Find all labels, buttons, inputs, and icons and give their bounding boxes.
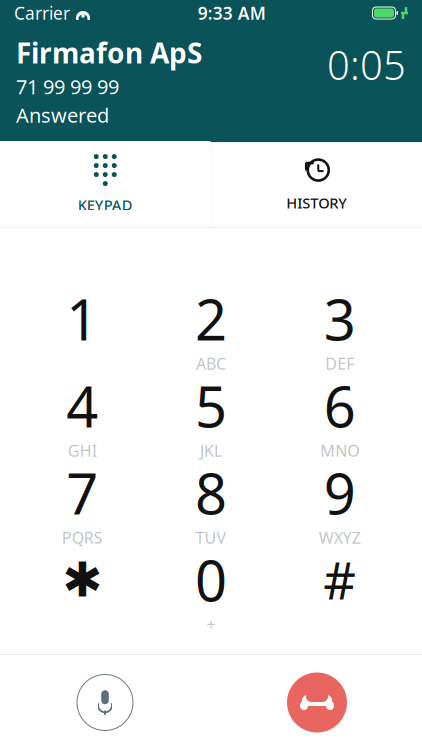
staticText: KEYPAD xyxy=(78,195,133,215)
button[interactable]: 4 xyxy=(18,373,147,453)
button[interactable]: 6 xyxy=(275,373,404,453)
button[interactable]: End call xyxy=(262,657,372,747)
button[interactable]: HISTORY xyxy=(211,143,422,227)
staticText: 4 xyxy=(66,369,98,443)
staticText: TUV xyxy=(195,527,226,548)
staticText: # xyxy=(323,546,356,613)
staticText: HISTORY xyxy=(286,193,347,213)
button[interactable]: 1 xyxy=(18,286,147,366)
button[interactable]: 8 xyxy=(147,460,275,540)
button[interactable]: # xyxy=(275,547,404,627)
staticText: 71 99 99 99 xyxy=(16,73,119,100)
staticText: WXYZ xyxy=(319,527,361,548)
staticText: 0:05 xyxy=(327,38,406,91)
button[interactable]: 2 xyxy=(147,286,275,366)
staticText: GHI xyxy=(68,440,97,461)
staticText: 2 xyxy=(195,282,227,356)
button[interactable]: 5 xyxy=(147,373,275,453)
button[interactable]: Mute xyxy=(50,657,160,747)
staticText: PQRS xyxy=(62,527,103,548)
staticText: JKL xyxy=(200,440,222,461)
staticText: 8 xyxy=(195,456,227,530)
staticText: 7 xyxy=(66,456,98,530)
staticText: ✱ xyxy=(62,553,102,607)
staticText: 9 xyxy=(324,456,356,530)
staticText: MNO xyxy=(320,440,359,461)
button[interactable]: 3 xyxy=(275,286,404,366)
button[interactable]: 7 xyxy=(18,460,147,540)
staticText: Carrier xyxy=(14,1,70,24)
staticText: 9:33 AM xyxy=(198,1,266,24)
staticText: 3 xyxy=(324,282,356,356)
button[interactable]: ✱ xyxy=(18,547,147,627)
staticText: ABC xyxy=(196,353,226,374)
staticText: Firmafon ApS xyxy=(16,34,202,71)
staticText: 1 xyxy=(66,282,98,356)
staticText: DEF xyxy=(325,353,354,374)
staticText: 5 xyxy=(195,369,227,443)
staticText: Answered xyxy=(16,102,109,128)
button[interactable]: 9 xyxy=(275,460,404,540)
staticText: + xyxy=(206,614,215,635)
button[interactable]: 0 xyxy=(147,547,275,627)
button[interactable]: KEYPAD xyxy=(0,141,210,229)
staticText: 0 xyxy=(195,543,227,617)
staticText: 6 xyxy=(324,369,356,443)
